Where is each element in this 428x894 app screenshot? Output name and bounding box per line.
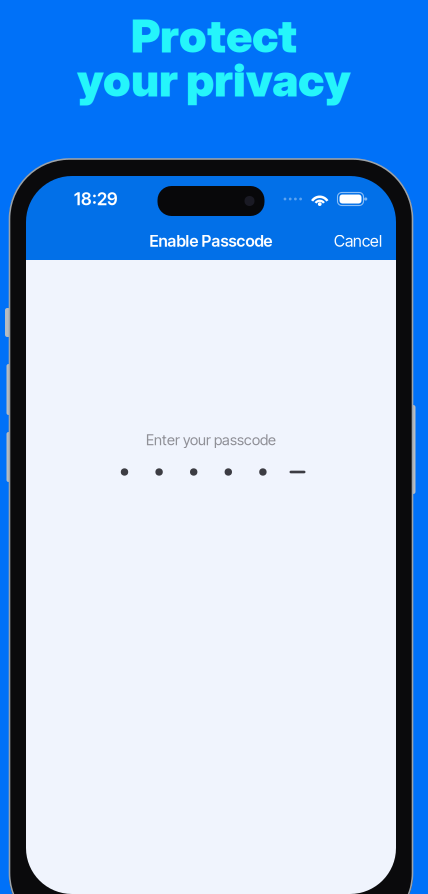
- staticText: 18:29: [74, 188, 118, 209]
- staticText: Enable Passcode: [149, 231, 272, 251]
- staticText: Enter your passcode: [146, 431, 276, 449]
- button[interactable]: Cancel: [314, 221, 396, 261]
- staticText: your privacy: [77, 53, 351, 107]
- staticText: Protect: [131, 9, 297, 63]
- staticText: Cancel: [334, 231, 382, 251]
